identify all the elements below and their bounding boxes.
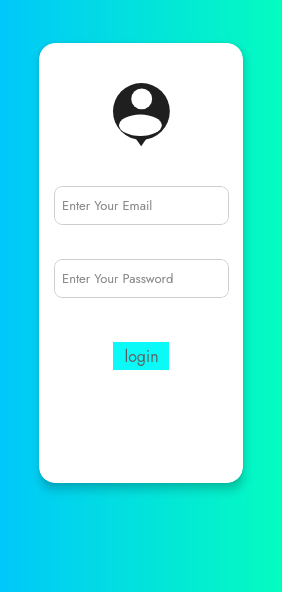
staticText: Enter Your Password [62,269,174,288]
staticText: Enter Your Email [62,196,153,215]
button[interactable]: Enter Your Password [54,259,229,298]
staticText: login [124,345,159,368]
other: Profile [113,83,170,147]
button[interactable]: login [113,342,169,370]
button[interactable]: Enter Your Email [54,186,229,225]
